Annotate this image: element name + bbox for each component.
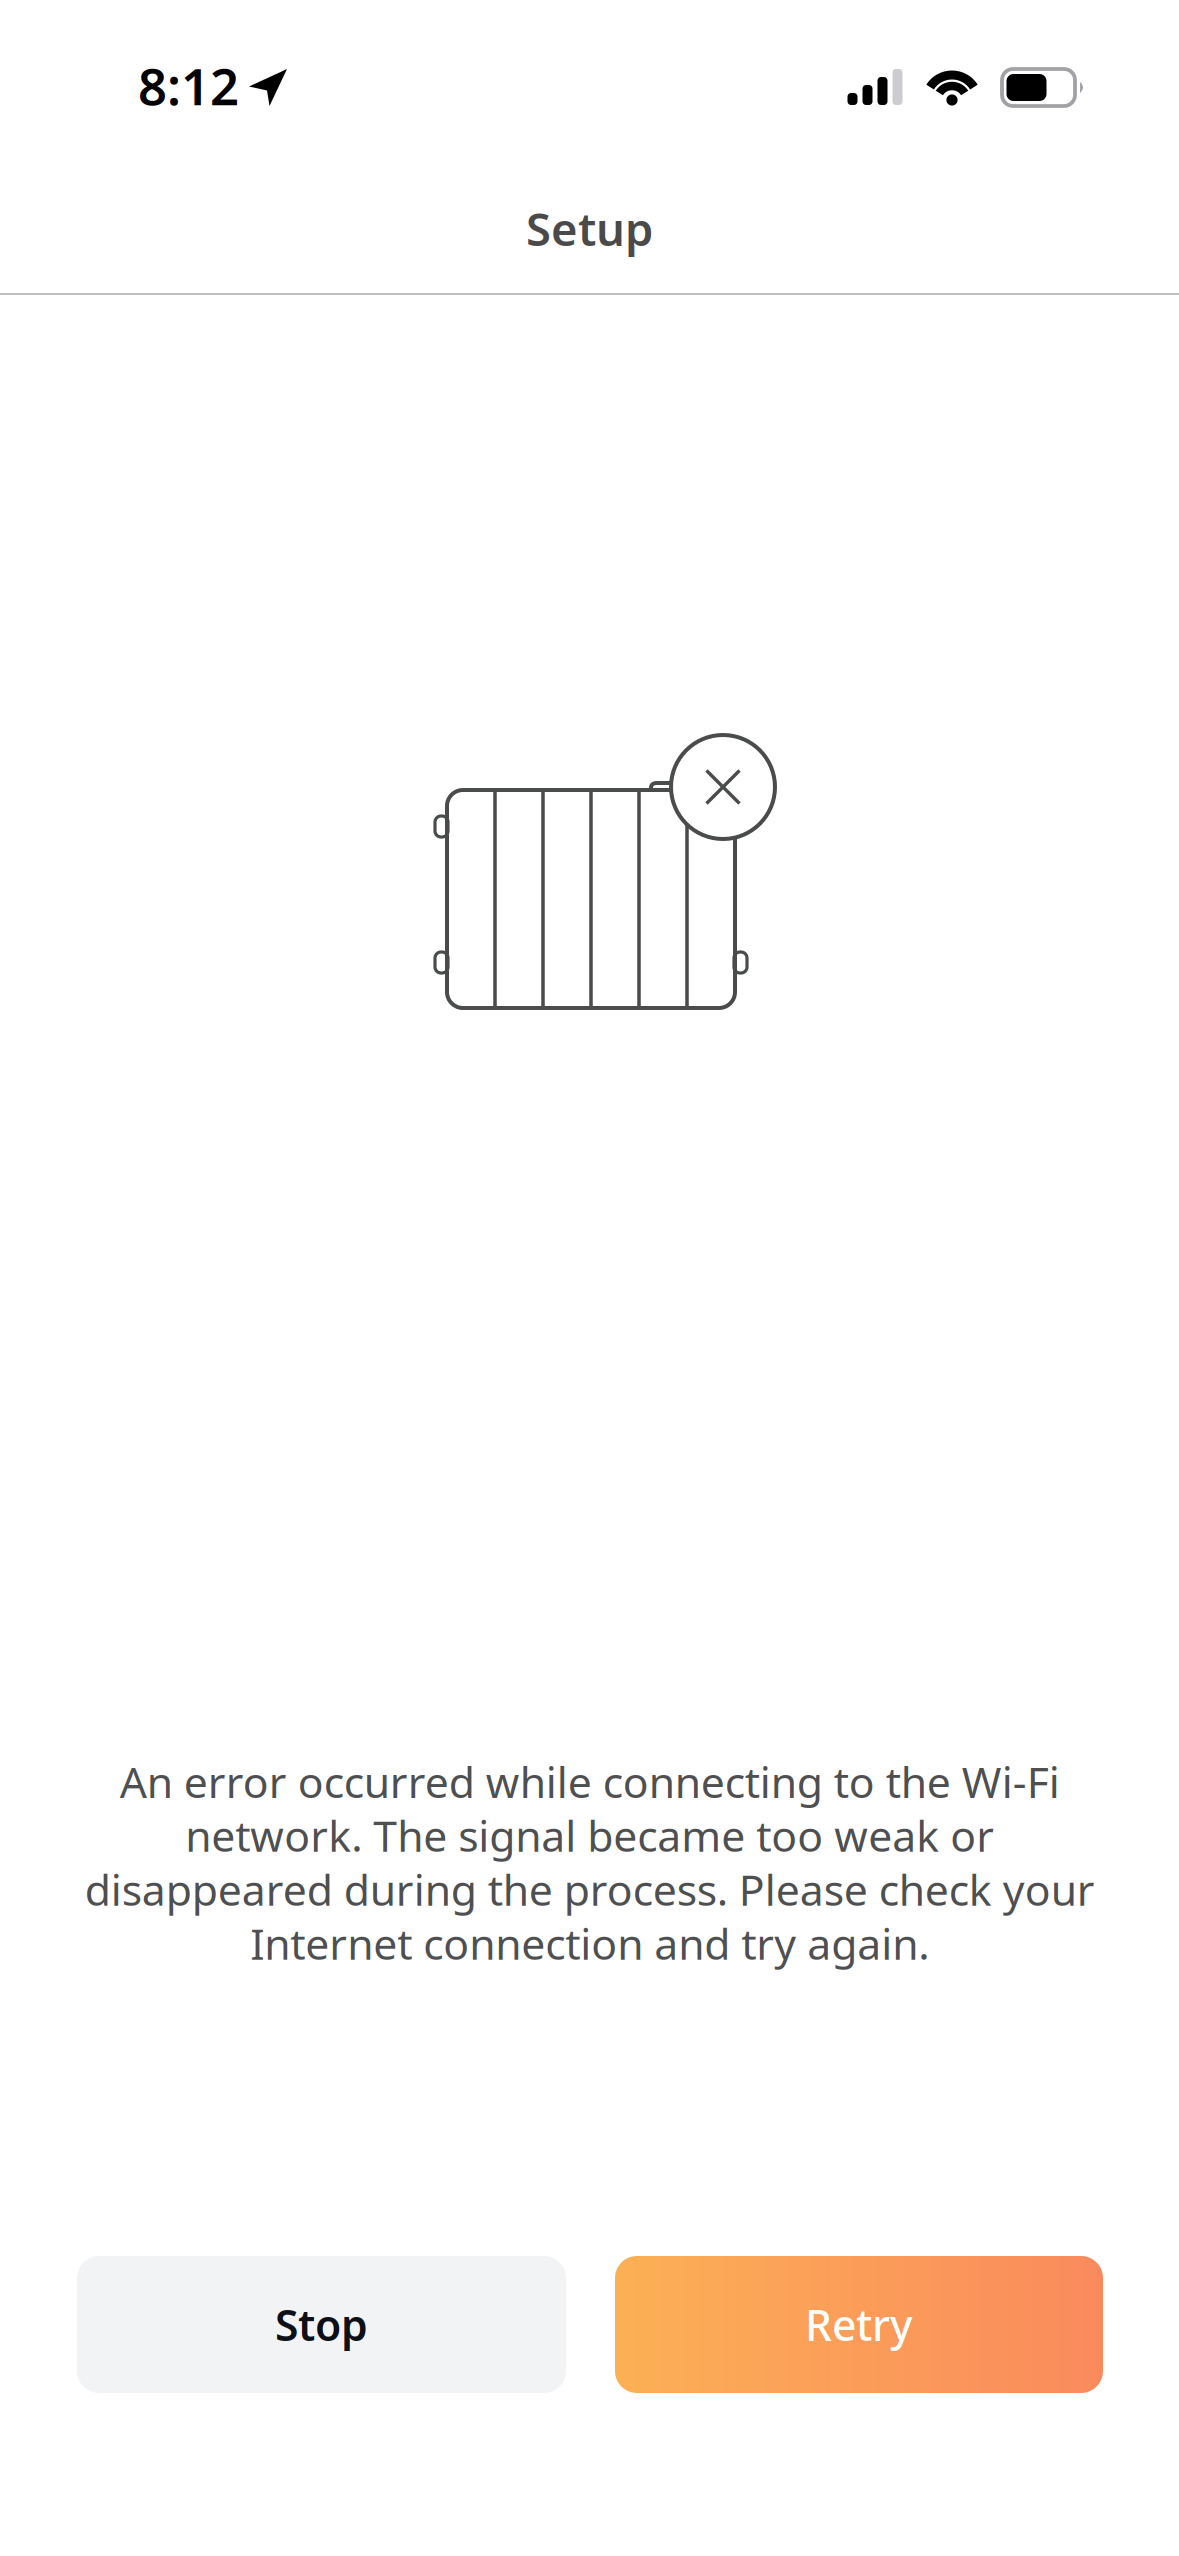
staticText: Setup [526, 198, 653, 259]
button[interactable]: Stop [77, 2256, 566, 2393]
button[interactable]: Retry [615, 2256, 1103, 2393]
staticText: 8:12 [138, 52, 239, 119]
staticText: An error occurred while connecting to th… [84, 1753, 1094, 1971]
staticText: Stop [275, 2296, 368, 2353]
staticText: Retry [805, 2296, 913, 2353]
